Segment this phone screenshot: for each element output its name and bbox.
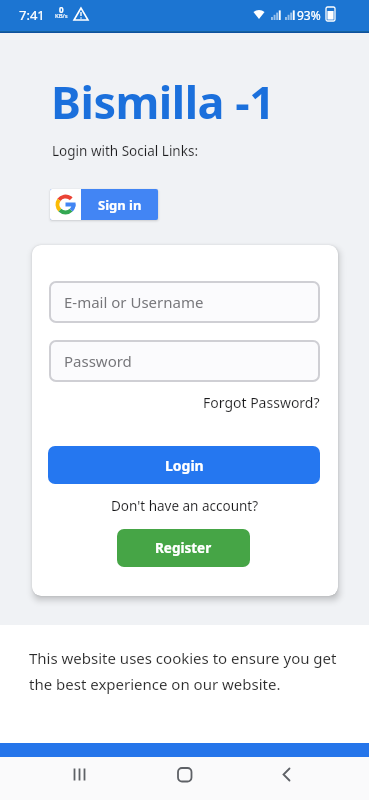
staticText: 93% <box>297 7 321 23</box>
staticText: 7:41 <box>19 6 45 24</box>
staticText: Bismilla -1 <box>51 71 275 132</box>
staticText: E-mail or Username <box>64 292 204 312</box>
staticText: Login <box>165 456 204 475</box>
staticText: This website uses cookies to ensure you … <box>29 648 337 668</box>
staticText: KB/s <box>55 12 68 20</box>
staticText: Login with Social Links: <box>52 142 199 160</box>
staticText: Forgot Password? <box>203 393 320 412</box>
staticText: Register <box>155 539 212 557</box>
staticText: the best experience on our website. <box>29 674 281 694</box>
staticText: Sign in <box>98 196 142 214</box>
staticText: Don't have an account? <box>111 497 259 515</box>
staticText: 0 <box>59 4 64 15</box>
staticText: Password <box>64 351 132 371</box>
